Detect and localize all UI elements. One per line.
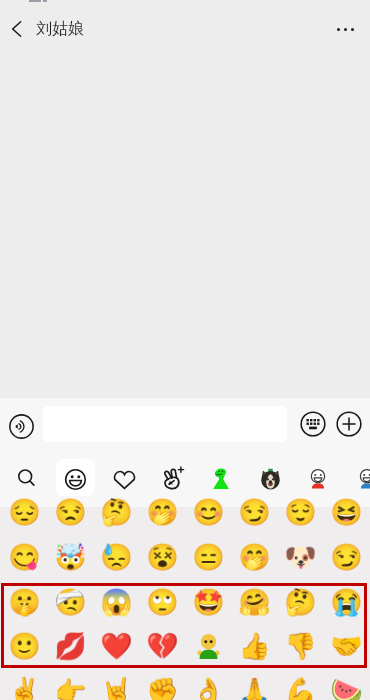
- staticText: 🙄: [146, 587, 179, 618]
- button[interactable]: 😋: [1, 535, 47, 580]
- staticText: 😋: [8, 542, 41, 573]
- button[interactable]: 🤗: [231, 580, 277, 625]
- staticText: 🤭: [146, 497, 179, 528]
- button[interactable]: 😆: [323, 490, 369, 535]
- staticText: 😏: [238, 497, 271, 528]
- button[interactable]: 😓: [93, 535, 139, 580]
- staticText: 👉: [54, 676, 87, 700]
- button[interactable]: Keyboard: [299, 410, 327, 438]
- staticText: 👌: [192, 676, 225, 700]
- button[interactable]: 😭: [323, 580, 369, 625]
- button[interactable]: 😏: [231, 490, 277, 535]
- staticText: 👍: [238, 631, 271, 662]
- button[interactable]: 😑: [185, 535, 231, 580]
- staticText: 💪: [284, 676, 317, 700]
- button[interactable]: 😊: [185, 490, 231, 535]
- button[interactable]: 👎: [277, 624, 323, 669]
- staticText: 刘姑娘: [36, 19, 84, 39]
- button[interactable]: 😵: [139, 535, 185, 580]
- button[interactable]: ✌️: [1, 669, 47, 700]
- staticText: 😔: [8, 497, 41, 528]
- button[interactable]: 🤔: [93, 490, 139, 535]
- button[interactable]: 💋: [47, 624, 93, 669]
- button[interactable]: 😔: [1, 490, 47, 535]
- staticText: 🙏: [238, 676, 271, 700]
- button[interactable]: Search emoji: [2, 454, 50, 502]
- button[interactable]: 🐶: [277, 535, 323, 580]
- staticText: 🤫: [8, 587, 41, 618]
- button[interactable]: 😌: [277, 490, 323, 535]
- button[interactable]: ❤️: [93, 624, 139, 669]
- staticText: 🤯: [54, 542, 87, 573]
- button[interactable]: 🤫: [1, 580, 47, 625]
- staticText: ✊: [146, 676, 179, 700]
- button[interactable]: 👍: [231, 624, 277, 669]
- button[interactable]: 💔: [139, 624, 185, 669]
- button[interactable]: 🤭: [231, 535, 277, 580]
- button[interactable]: 🙏: [231, 669, 277, 700]
- button[interactable]: 🙄: [139, 580, 185, 625]
- button[interactable]: Back: [0, 11, 32, 47]
- button[interactable]: 🤘: [93, 669, 139, 700]
- staticText: 🍉: [330, 676, 363, 700]
- staticText: 🤩: [192, 587, 225, 618]
- staticText: 😌: [284, 497, 317, 528]
- staticText: 😏: [330, 542, 363, 573]
- button[interactable]: More options: [328, 11, 362, 47]
- button[interactable]: ✊: [139, 669, 185, 700]
- staticText: 😵: [146, 542, 179, 573]
- button[interactable]: Dinosaur stickers: [197, 454, 245, 502]
- button[interactable]: Character stickers: [294, 454, 342, 502]
- button[interactable]: More: [335, 410, 363, 438]
- button[interactable]: 😱: [93, 580, 139, 625]
- button[interactable]: Favourites: [100, 456, 148, 504]
- button[interactable]: 💪: [277, 669, 323, 700]
- staticText: 😆: [330, 497, 363, 528]
- staticText: 🐶: [284, 542, 317, 573]
- staticText: 😑: [192, 542, 225, 573]
- staticText: 💋: [54, 631, 87, 662]
- button[interactable]: 🍉: [323, 669, 369, 700]
- staticText: 😭: [330, 587, 363, 618]
- staticText: 🤕: [54, 587, 87, 618]
- staticText: 😒: [54, 497, 87, 528]
- staticText: 🤘: [100, 676, 133, 700]
- staticText: 🤭: [238, 542, 271, 573]
- button[interactable]: 🤭: [139, 490, 185, 535]
- staticText: 😓: [100, 542, 133, 573]
- button[interactable]: 🤔: [277, 580, 323, 625]
- button[interactable]: More stickers: [343, 454, 370, 502]
- button[interactable]: Emoji: [51, 455, 99, 503]
- staticText: 🤗: [238, 587, 271, 618]
- button[interactable]: 🤝: [323, 624, 369, 669]
- button[interactable]: 🤯: [47, 535, 93, 580]
- staticText: ❤️: [100, 631, 133, 662]
- button[interactable]: Voice message: [7, 412, 35, 440]
- button[interactable]: 👌: [185, 669, 231, 700]
- staticText: 💔: [146, 631, 179, 662]
- button[interactable]: 😒: [47, 490, 93, 535]
- button[interactable]: 🤕: [47, 580, 93, 625]
- button[interactable]: Stickers: [149, 454, 197, 502]
- staticText: 🙂: [8, 631, 41, 662]
- button[interactable]: [185, 624, 231, 669]
- button[interactable]: Husky stickers: [246, 454, 294, 502]
- staticText: 👎: [284, 631, 317, 662]
- button[interactable]: 🤩: [185, 580, 231, 625]
- button[interactable]: 😏: [323, 535, 369, 580]
- button[interactable]: 👉: [47, 669, 93, 700]
- staticText: 🤝: [330, 631, 363, 662]
- staticText: 🤔: [100, 497, 133, 528]
- staticText: ✌️: [8, 676, 41, 700]
- button[interactable]: 🙂: [1, 624, 47, 669]
- staticText: 😊: [192, 497, 225, 528]
- staticText: 😱: [100, 587, 133, 618]
- staticText: 🤔: [284, 587, 317, 618]
